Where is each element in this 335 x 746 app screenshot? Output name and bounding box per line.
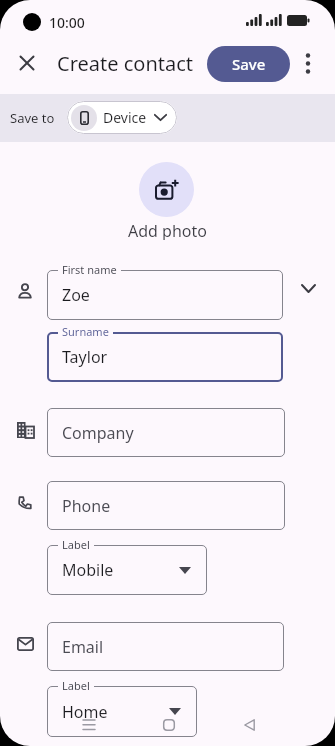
button[interactable] — [47, 545, 207, 595]
button[interactable] — [47, 408, 285, 457]
button[interactable] — [163, 719, 175, 731]
button[interactable] — [47, 686, 197, 737]
button[interactable] — [82, 719, 96, 731]
button[interactable] — [244, 719, 255, 731]
button[interactable]: Save — [207, 46, 290, 82]
staticText: First name — [62, 262, 117, 277]
button[interactable] — [47, 481, 285, 530]
staticText: Add photo — [128, 220, 207, 240]
button[interactable] — [301, 284, 316, 293]
staticText: Save — [232, 54, 266, 74]
staticText: Phone — [62, 495, 111, 517]
button[interactable] — [47, 332, 283, 382]
staticText: Zoe — [62, 284, 90, 306]
staticText: 10:00 — [49, 13, 85, 30]
button[interactable] — [139, 162, 194, 217]
staticText: Company — [62, 422, 134, 444]
staticText: Save to — [10, 109, 55, 127]
staticText: Email — [62, 636, 104, 658]
staticText: Mobile — [62, 559, 114, 581]
button[interactable] — [47, 270, 283, 320]
staticText: Surname — [62, 324, 109, 339]
staticText: Taylor — [62, 346, 108, 368]
button[interactable] — [47, 622, 284, 671]
button[interactable] — [20, 56, 34, 70]
staticText: Home — [62, 701, 108, 723]
staticText: Label — [62, 678, 90, 693]
staticText: Label — [62, 537, 90, 552]
staticText: Create contact — [57, 50, 194, 77]
button[interactable]: Device — [67, 101, 177, 134]
button[interactable] — [302, 51, 314, 76]
staticText: Device — [103, 108, 147, 127]
